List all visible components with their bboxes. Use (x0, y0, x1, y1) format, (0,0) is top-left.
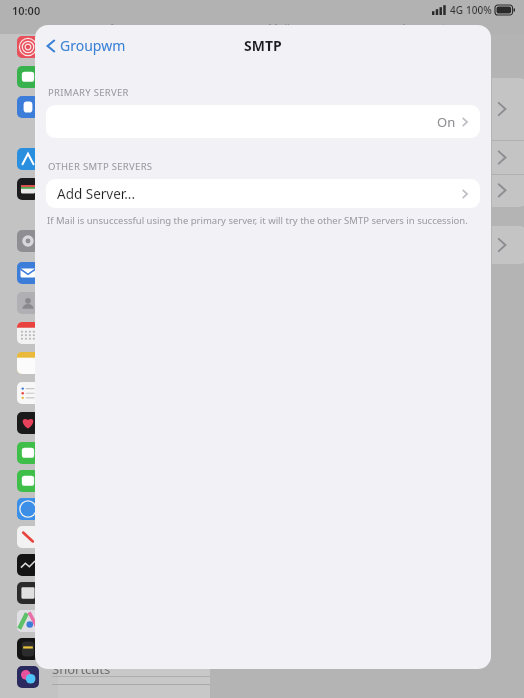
staticText: PRIMARY SERVER (48, 86, 129, 99)
button[interactable]: On (46, 105, 480, 138)
staticText: Shortcuts (52, 660, 111, 678)
staticText: Add Server... (57, 185, 136, 203)
button[interactable]: Groupwm (43, 32, 129, 59)
staticText: Groupwm (60, 36, 126, 55)
staticText: 100% (466, 3, 492, 17)
button[interactable]: Add Server... (46, 179, 480, 208)
staticText: 10:00 (12, 3, 41, 18)
staticText: OTHER SMTP SERVERS (48, 160, 153, 173)
staticText: On (437, 113, 456, 131)
staticText: If Mail is unsuccessful using the primar… (47, 214, 468, 227)
staticText: SMTP (244, 36, 282, 55)
staticText: Mail (268, 20, 290, 35)
staticText: Settings (84, 20, 138, 38)
staticText: Accounts (400, 20, 452, 36)
staticText: 4G (450, 3, 463, 17)
